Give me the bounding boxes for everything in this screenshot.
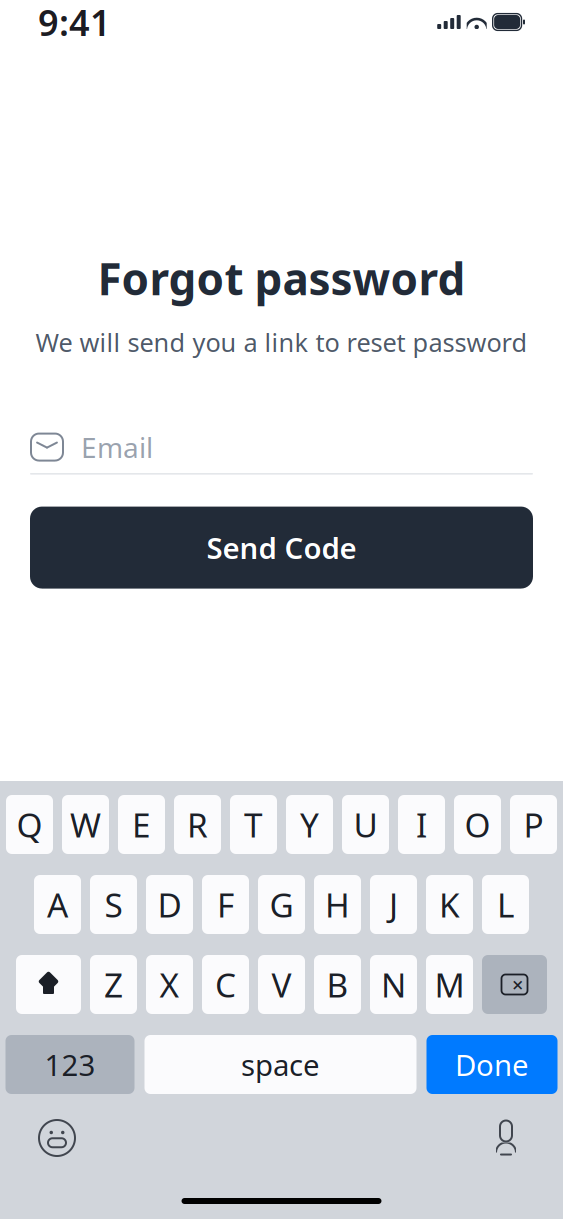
button[interactable]: S [90, 875, 137, 934]
staticText: K [439, 882, 460, 927]
button[interactable]: B [314, 955, 361, 1014]
staticText: P [523, 802, 543, 847]
staticText: Z [104, 962, 123, 1007]
button[interactable]: Q [6, 795, 53, 854]
staticText: V [271, 962, 291, 1007]
button[interactable]: Emoji [35, 1116, 79, 1160]
button[interactable]: Done [426, 1035, 557, 1094]
staticText: Forgot password [97, 249, 465, 307]
staticText: B [326, 962, 348, 1007]
staticText: H [325, 882, 350, 927]
button[interactable]: Send Code [30, 507, 533, 589]
button[interactable]: Shift [16, 955, 81, 1014]
button[interactable]: W [62, 795, 109, 854]
staticText: Email [81, 428, 153, 466]
button[interactable]: M [426, 955, 473, 1014]
button[interactable]: Dictation [484, 1116, 528, 1160]
staticText: N [381, 962, 406, 1007]
button[interactable]: J [370, 875, 417, 934]
button[interactable]: Email [30, 421, 533, 473]
staticText: Y [300, 802, 319, 847]
button[interactable]: Delete [482, 955, 547, 1014]
button[interactable]: F [202, 875, 249, 934]
staticText: We will send you a link to reset passwor… [35, 325, 527, 359]
staticText: 123 [44, 1045, 95, 1084]
button[interactable]: T [230, 795, 277, 854]
button[interactable]: 123 [5, 1035, 134, 1094]
button[interactable]: N [370, 955, 417, 1014]
staticText: space [241, 1045, 320, 1084]
staticText: W [70, 802, 101, 847]
button[interactable]: H [314, 875, 361, 934]
button[interactable]: U [342, 795, 389, 854]
staticText: 9:41 [38, 0, 111, 46]
button[interactable]: C [202, 955, 249, 1014]
button[interactable]: space [144, 1035, 416, 1094]
staticText: × [512, 971, 523, 998]
button[interactable]: E [118, 795, 165, 854]
staticText: I [416, 802, 427, 847]
staticText: R [187, 802, 208, 847]
staticText: J [389, 882, 398, 927]
button[interactable]: G [258, 875, 305, 934]
staticText: U [353, 802, 377, 847]
button[interactable]: P [510, 795, 557, 854]
staticText: Q [16, 802, 42, 847]
button[interactable]: I [398, 795, 445, 854]
staticText: F [217, 882, 234, 927]
button[interactable]: D [146, 875, 193, 934]
button[interactable]: R [174, 795, 221, 854]
button[interactable]: X [146, 955, 193, 1014]
button[interactable]: L [482, 875, 529, 934]
staticText: X [159, 962, 179, 1007]
staticText: E [132, 802, 151, 847]
staticText: O [464, 802, 490, 847]
button[interactable]: A [34, 875, 81, 934]
staticText: Done [455, 1045, 529, 1084]
staticText: M [434, 962, 464, 1007]
staticText: G [269, 882, 293, 927]
staticText: C [215, 962, 236, 1007]
button[interactable]: O [454, 795, 501, 854]
staticText: S [104, 882, 122, 927]
button[interactable]: K [426, 875, 473, 934]
staticText: A [47, 882, 68, 927]
button[interactable]: Y [286, 795, 333, 854]
button[interactable]: Z [90, 955, 137, 1014]
staticText: D [157, 882, 181, 927]
button[interactable]: V [258, 955, 305, 1014]
staticText: L [497, 882, 514, 927]
staticText: T [244, 802, 263, 847]
staticText: Send Code [206, 528, 356, 567]
